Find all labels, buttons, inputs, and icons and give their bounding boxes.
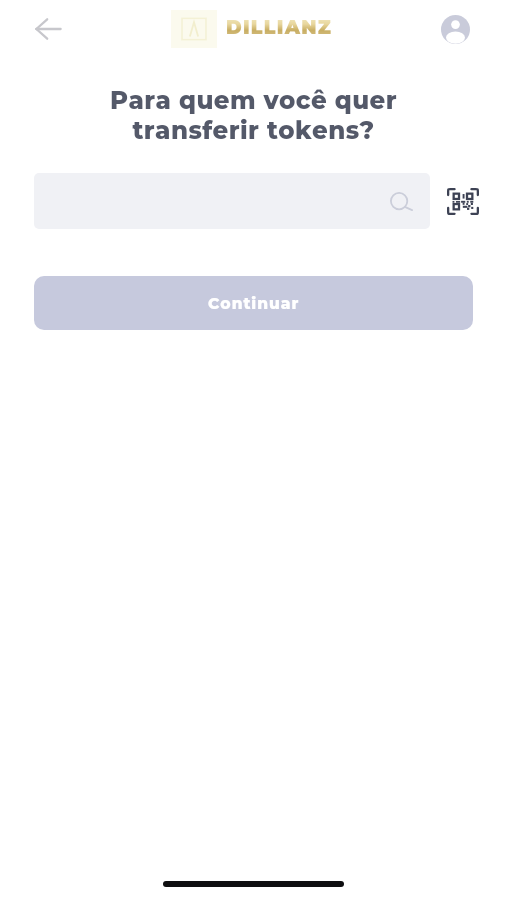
staticText: DILLIANZ (226, 16, 333, 39)
button[interactable]: Back (26, 7, 70, 51)
button[interactable]: Scan QR code (445, 183, 481, 219)
staticText: Continuar (208, 294, 300, 313)
button[interactable]: Profile (437, 11, 473, 47)
button[interactable]: Continuar (34, 276, 473, 330)
staticText: Para quem você quer transferir tokens? (0, 85, 507, 145)
